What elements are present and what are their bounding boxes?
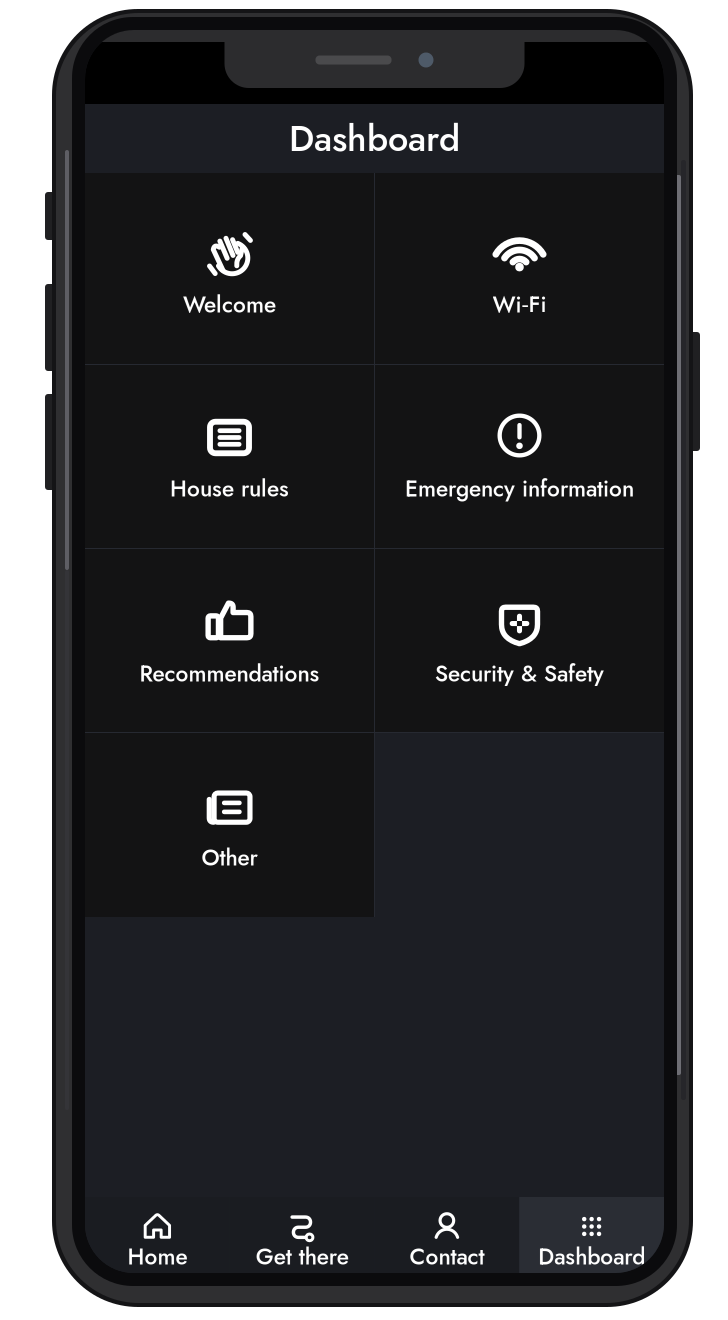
staticText: Get there [256, 1240, 349, 1273]
button[interactable]: Recommendations [85, 549, 374, 732]
button[interactable]: Home [85, 1197, 230, 1273]
staticText: Emergency information [405, 472, 634, 505]
staticText: House rules [170, 472, 289, 505]
button[interactable]: House rules [85, 365, 374, 548]
button[interactable]: Get there [230, 1197, 375, 1273]
button[interactable]: Other [85, 733, 374, 917]
button[interactable]: Emergency information [375, 365, 664, 548]
staticText: Dashboard [538, 1240, 645, 1273]
staticText: Other [201, 841, 257, 874]
staticText: Dashboard [289, 112, 460, 164]
button[interactable]: Dashboard [519, 1197, 664, 1273]
button[interactable]: Contact [374, 1197, 519, 1273]
button[interactable]: Wi‑Fi [375, 173, 664, 364]
staticText: Contact [409, 1240, 484, 1273]
staticText: Recommendations [139, 657, 319, 690]
staticText: Security & Safety [435, 657, 604, 690]
staticText: Wi‑Fi [492, 288, 546, 321]
staticText: Home [127, 1240, 187, 1273]
button[interactable]: Welcome [85, 173, 374, 364]
button[interactable]: Security & Safety [375, 549, 664, 732]
staticText: Welcome [183, 288, 276, 321]
